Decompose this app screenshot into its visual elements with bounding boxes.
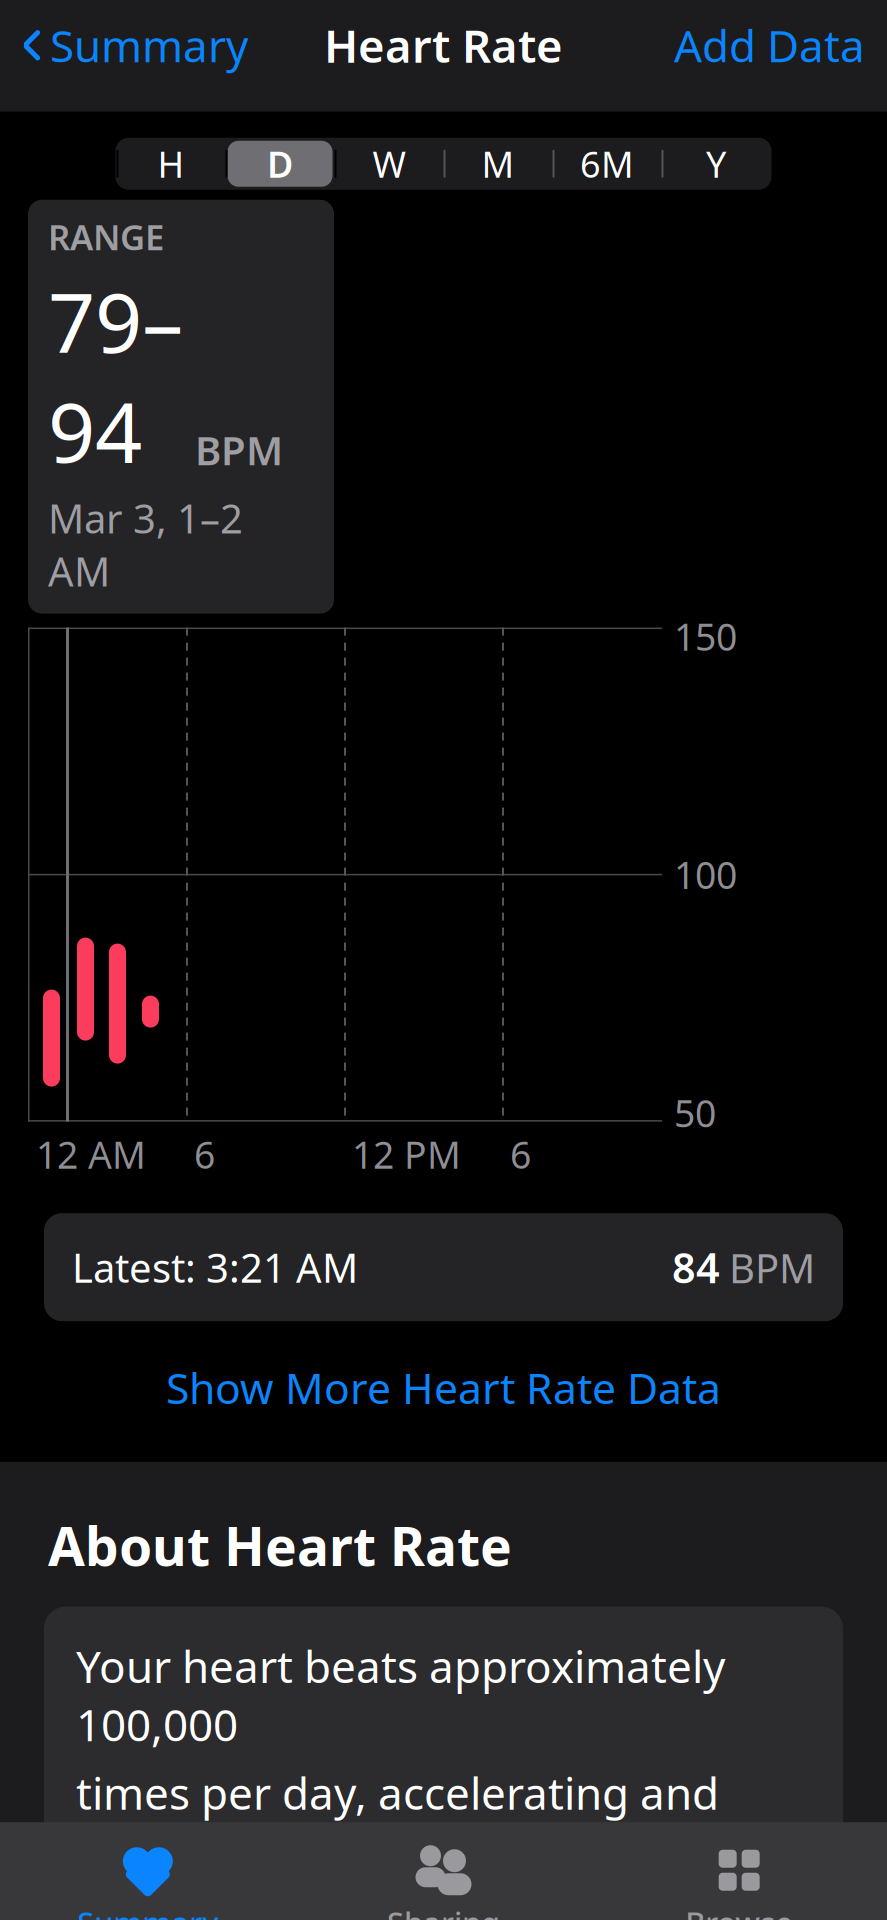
button[interactable]: Summary [0, 1838, 296, 1920]
staticText: 12 AM [36, 1130, 146, 1179]
button[interactable]: M [443, 138, 552, 190]
button[interactable]: Summary [22, 6, 248, 84]
staticText: D [267, 140, 293, 188]
staticText: BPM [195, 423, 283, 476]
staticText: 100 [674, 850, 737, 899]
staticText: Latest: 3:21 AM [72, 1241, 358, 1294]
staticText: 84 [672, 1240, 720, 1295]
staticText: Summary [77, 1902, 218, 1920]
staticText: 12 PM [352, 1130, 461, 1179]
button[interactable]: 6M [552, 138, 661, 190]
button[interactable]: Browse [591, 1838, 887, 1920]
staticText: M [481, 140, 514, 188]
button[interactable]: Y [661, 138, 770, 190]
staticText: Heart Rate [324, 15, 563, 75]
button[interactable]: W [334, 138, 443, 190]
button[interactable]: H [116, 138, 225, 190]
staticText: 79–94 [48, 266, 183, 485]
staticText: 6 [510, 1130, 531, 1179]
button[interactable]: Add Data [674, 6, 865, 84]
button[interactable]: Sharing [296, 1838, 591, 1920]
button[interactable]: Show More Heart Rate Data [0, 1345, 887, 1430]
staticText: W [372, 140, 405, 188]
staticText: Browse [685, 1902, 793, 1920]
staticText: through periods of rest and exertion. Yo… [76, 1890, 644, 1920]
staticText: Sharing [387, 1902, 500, 1920]
staticText: Mar 3, 1–2 AM [48, 491, 243, 598]
staticText: 150 [674, 612, 737, 661]
staticText: Add Data [674, 16, 865, 74]
staticText: Show More Heart Rate Data [166, 1359, 721, 1416]
staticText: Summary [50, 16, 248, 74]
button[interactable]: D [225, 138, 334, 190]
staticText: H [157, 140, 184, 188]
staticText: 6M [580, 140, 634, 188]
staticText: times per day, accelerating and slowing [76, 1763, 719, 1880]
staticText: Your heart beats approximately 100,000 [76, 1637, 725, 1754]
staticText: About Heart Rate [48, 1510, 512, 1581]
staticText: 50 [674, 1088, 716, 1138]
staticText: 6 [194, 1130, 215, 1179]
staticText: RANGE [48, 214, 164, 260]
staticText: Y [706, 140, 726, 188]
staticText: BPM [729, 1241, 815, 1294]
